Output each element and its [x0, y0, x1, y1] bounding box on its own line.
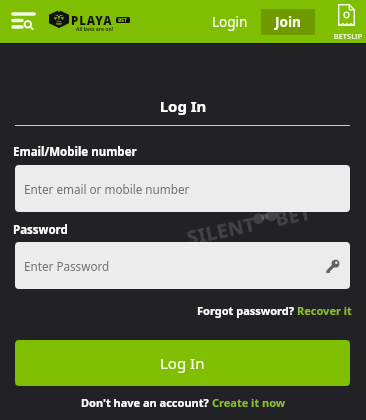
staticText: Enter Password — [24, 258, 110, 274]
staticText: SILENT — [185, 211, 259, 251]
staticText: Enter email or mobile number — [24, 181, 190, 197]
staticText: Log In — [160, 353, 205, 373]
button[interactable]: Menu and search — [0, 0, 48, 44]
staticText: All bets are on! — [76, 26, 114, 33]
staticText: Password — [13, 222, 68, 238]
staticText: Don't have an account? — [81, 395, 212, 410]
button[interactable]: Login — [199, 0, 256, 44]
button[interactable]: Enter Password — [15, 242, 350, 289]
button[interactable]: Recover it — [297, 303, 352, 318]
staticText: Email/Mobile number — [13, 144, 137, 160]
button[interactable]: Log In — [15, 340, 350, 386]
staticText: PLAYA — [71, 13, 113, 29]
staticText: Forgot password? — [197, 303, 297, 318]
staticText: BET — [273, 199, 314, 232]
staticText: Join — [275, 13, 301, 31]
staticText: BET — [118, 17, 128, 23]
staticText: Log In — [0, 96, 366, 116]
button[interactable]: Create it now — [212, 395, 286, 410]
staticText: Login — [212, 13, 248, 31]
button[interactable]: Join — [261, 9, 315, 35]
staticText: BETSLIP — [330, 31, 366, 41]
other: Show password — [325, 259, 340, 274]
button[interactable]: Enter email or mobile number — [15, 165, 350, 212]
button[interactable]: Betslip — [330, 0, 366, 44]
